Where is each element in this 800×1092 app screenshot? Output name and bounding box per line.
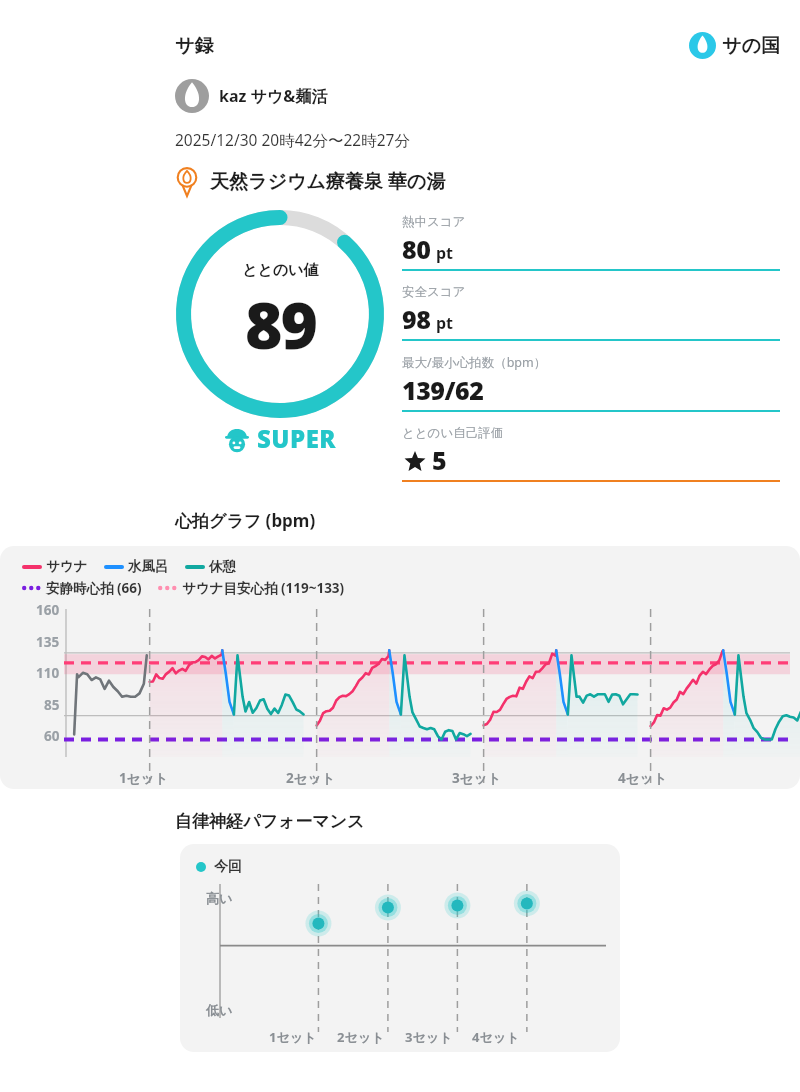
staticText: 水風呂 [128, 558, 169, 575]
button[interactable]: サの国 [689, 32, 780, 59]
button[interactable]: 最大/最小心拍数（bpm） [402, 354, 780, 425]
staticText: ととのい値 [242, 261, 319, 280]
staticText: 4セット [618, 769, 668, 787]
staticText: サの国 [722, 34, 780, 58]
staticText: 熱中スコア [402, 214, 466, 230]
staticText: 85 [44, 696, 60, 714]
staticText: 1セット [119, 769, 169, 787]
staticText: 安全スコア [402, 284, 466, 300]
staticText: 安静時心拍 (66) [46, 579, 142, 597]
staticText: サウナ目安心拍 (119~133) [182, 579, 345, 597]
staticText: サウナ [46, 558, 88, 575]
staticText: kaz サウ&麺活 [219, 85, 328, 107]
staticText: 3セット [452, 769, 502, 787]
button[interactable]: ととのい自己評価 [402, 425, 780, 495]
staticText: 160 [36, 601, 60, 619]
staticText: 最大/最小心拍数（bpm） [402, 354, 547, 371]
staticText: 98 [402, 302, 431, 336]
staticText: 89 [245, 281, 317, 368]
staticText: 5 [432, 443, 447, 477]
staticText: 2セット [286, 769, 336, 787]
staticText: サ録 [175, 34, 214, 58]
staticText: 139/62 [402, 373, 484, 407]
button[interactable]: SUPER [224, 422, 337, 455]
staticText: ととのい自己評価 [402, 425, 504, 441]
button[interactable]: 天然ラジウム療養泉 華の湯 [172, 166, 446, 196]
staticText: 1セット [269, 1028, 317, 1046]
staticText: 3セット [405, 1028, 453, 1046]
staticText: 自律神経パフォーマンス [175, 811, 365, 832]
staticText: 4セット [472, 1028, 520, 1046]
button[interactable]: 熱中スコア [402, 214, 780, 284]
staticText: 休憩 [209, 558, 236, 575]
staticText: 天然ラジウム療養泉 華の湯 [210, 168, 446, 194]
staticText: 110 [36, 664, 60, 682]
staticText: 今回 [214, 858, 242, 876]
staticText: 心拍グラフ (bpm) [175, 509, 316, 532]
staticText: 低い [206, 1002, 233, 1018]
staticText: pt [436, 312, 454, 334]
button[interactable]: kaz サウ&麺活 [175, 79, 328, 113]
staticText: 2セット [337, 1028, 385, 1046]
staticText: 135 [36, 633, 60, 651]
staticText: 2025/12/30 20時42分〜22時27分 [175, 129, 410, 150]
staticText: SUPER [257, 422, 337, 455]
button[interactable]: 安全スコア [402, 284, 780, 354]
staticText: 60 [44, 727, 60, 745]
staticText: pt [436, 242, 454, 264]
staticText: 高い [206, 890, 233, 906]
staticText: 80 [402, 232, 431, 266]
